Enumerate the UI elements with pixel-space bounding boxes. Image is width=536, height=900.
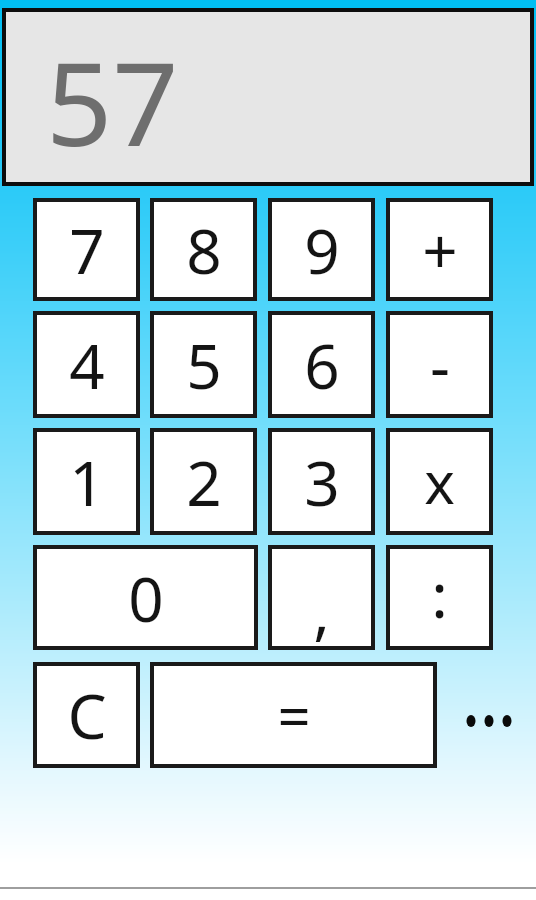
staticText: + — [422, 208, 458, 292]
staticText: 6 — [304, 323, 340, 407]
staticText: 57 — [46, 22, 179, 180]
button[interactable]: , — [268, 545, 375, 650]
staticText: 8 — [186, 208, 222, 292]
button[interactable]: 4 — [33, 311, 140, 418]
staticText: 1 — [69, 440, 105, 524]
button[interactable]: 3 — [268, 428, 375, 535]
staticText: = — [277, 676, 311, 755]
button[interactable]: 0 — [33, 545, 258, 650]
button[interactable]: 8 — [150, 198, 257, 301]
button[interactable]: 1 — [33, 428, 140, 535]
staticText: 2 — [186, 440, 222, 524]
staticText: C — [67, 673, 107, 757]
staticText: 9 — [304, 208, 340, 292]
button[interactable]: 2 — [150, 428, 257, 535]
button[interactable]: 7 — [33, 198, 140, 301]
button[interactable]: More options — [458, 690, 520, 752]
button[interactable]: 5 — [150, 311, 257, 418]
staticText: - — [430, 323, 450, 407]
staticText: , — [313, 568, 330, 652]
button[interactable]: x — [386, 428, 493, 535]
button[interactable]: 9 — [268, 198, 375, 301]
staticText: 3 — [304, 440, 340, 524]
staticText: x — [424, 442, 455, 521]
staticText: : — [431, 552, 448, 636]
button[interactable]: 6 — [268, 311, 375, 418]
button[interactable]: = — [150, 662, 437, 768]
staticText: 5 — [186, 323, 222, 407]
button[interactable]: : — [386, 545, 493, 650]
button[interactable]: 57 — [2, 8, 534, 186]
staticText: 0 — [128, 556, 164, 640]
staticText: 4 — [69, 323, 105, 407]
button[interactable]: C — [33, 662, 140, 768]
button[interactable]: - — [386, 311, 493, 418]
staticText: 7 — [69, 208, 105, 292]
button[interactable]: + — [386, 198, 493, 301]
